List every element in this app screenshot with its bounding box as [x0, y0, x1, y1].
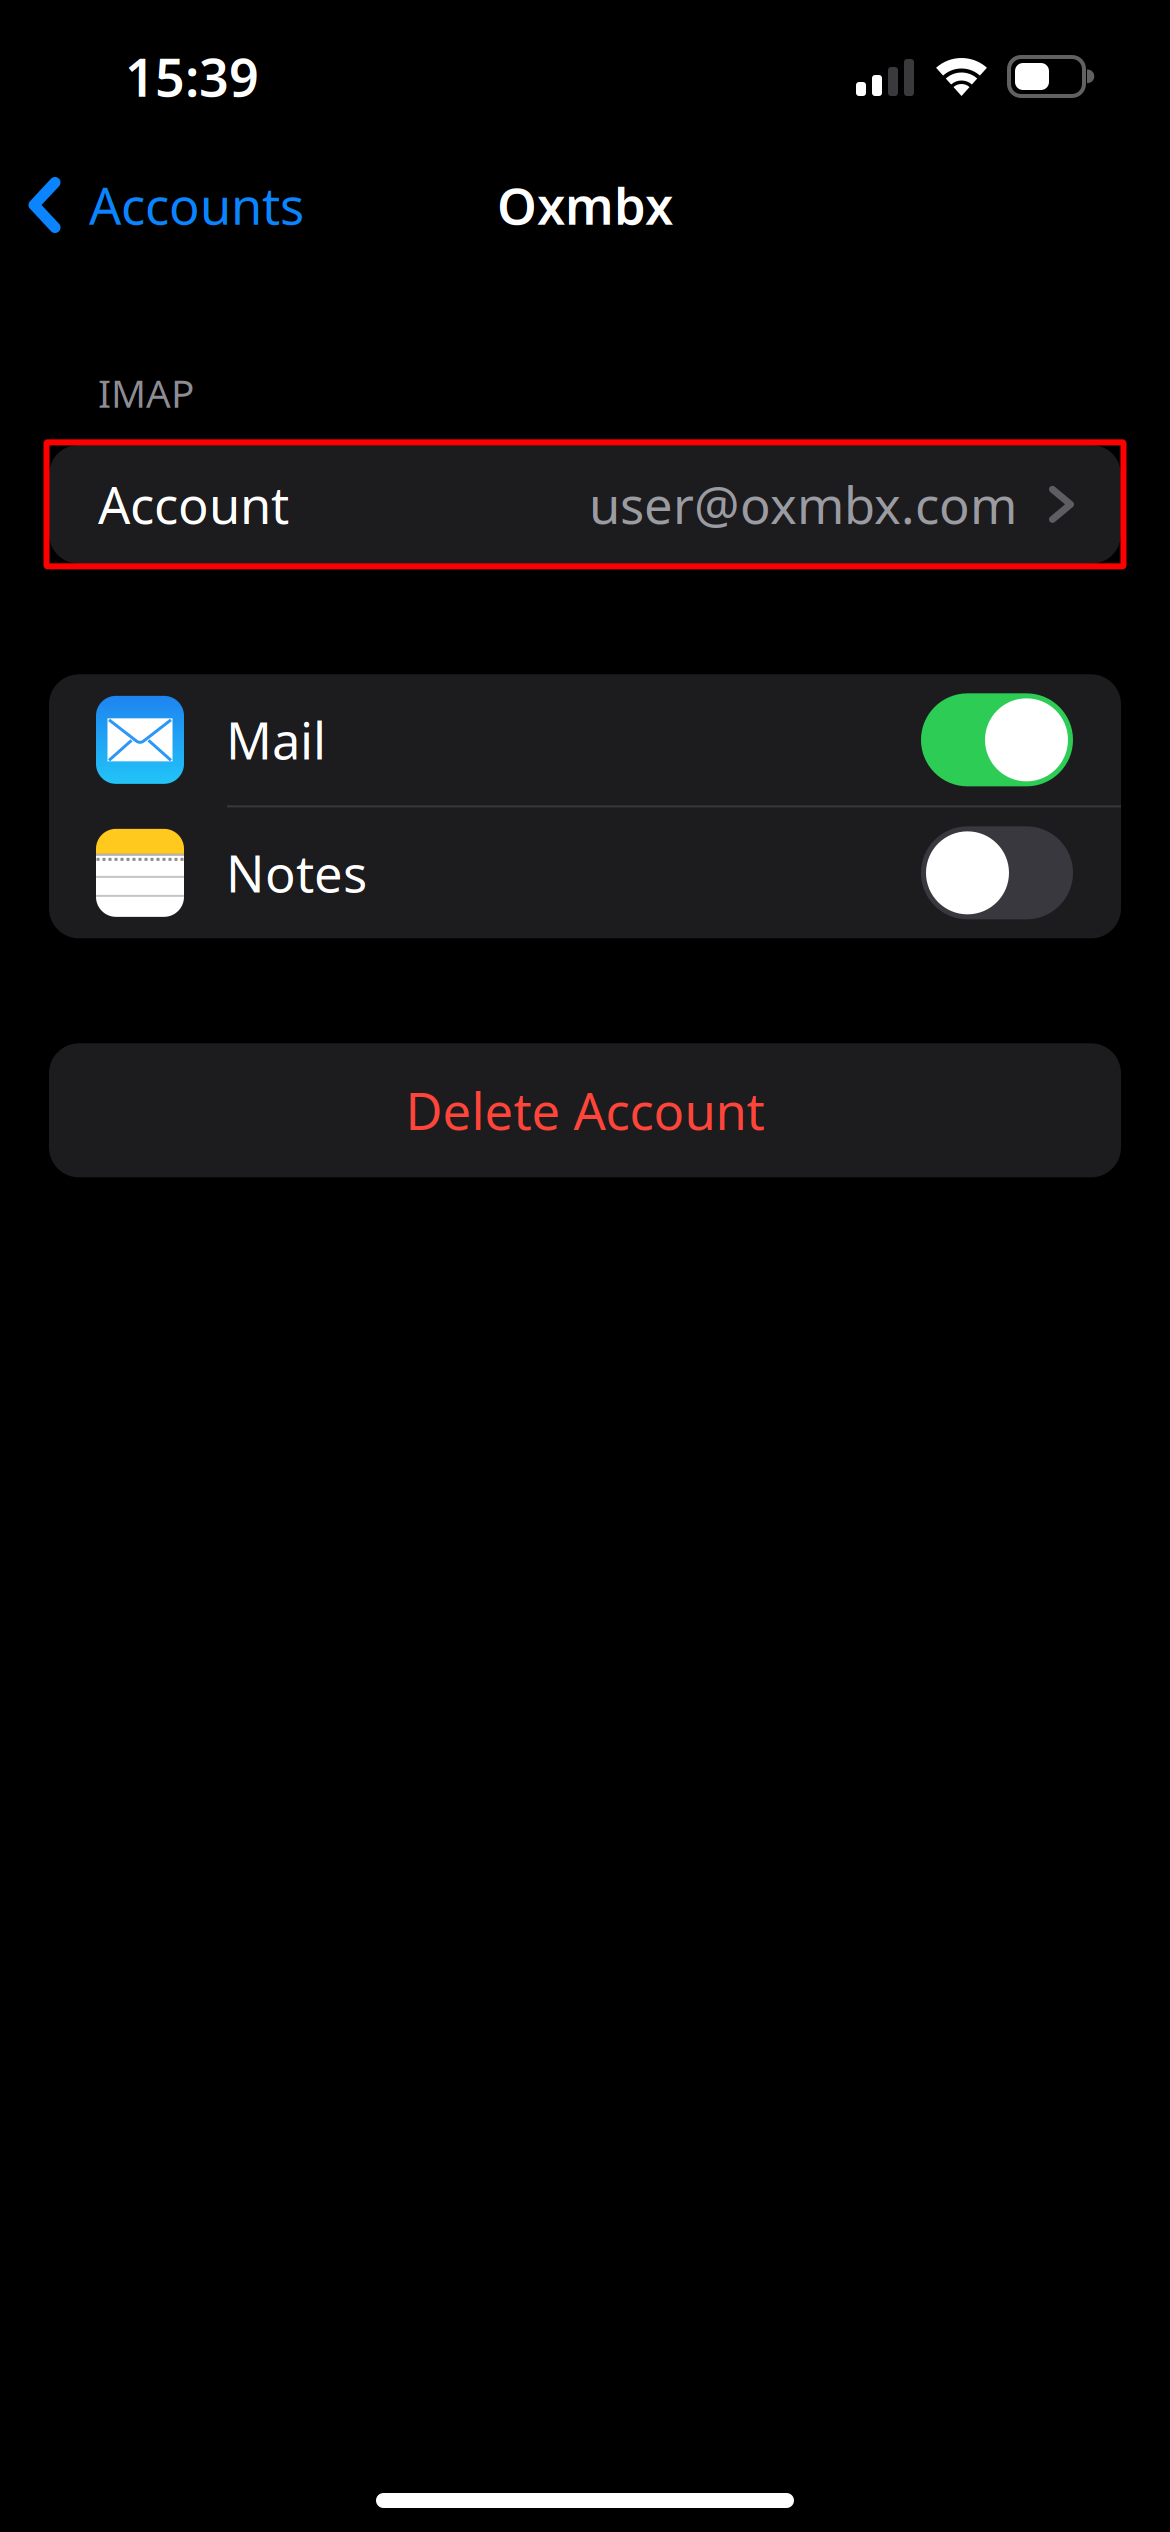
staticText: Accounts	[89, 171, 304, 239]
button[interactable]: Delete Account	[0, 1043, 1170, 1177]
staticText: Notes	[226, 839, 367, 906]
button[interactable]: Accounts	[0, 153, 326, 257]
staticText: Delete Account	[405, 1077, 764, 1144]
staticText: Oxmbx	[497, 171, 673, 239]
staticText: Mail	[226, 706, 326, 773]
button[interactable]: Notes	[49, 807, 1121, 938]
button[interactable]: Account	[0, 442, 1170, 566]
staticText: IMAP	[98, 367, 194, 418]
button[interactable]: Mail	[49, 674, 1121, 805]
staticText: user@oxmbx.com	[589, 471, 1017, 538]
staticText: Account	[98, 471, 289, 538]
staticText: 15:39	[125, 42, 259, 111]
